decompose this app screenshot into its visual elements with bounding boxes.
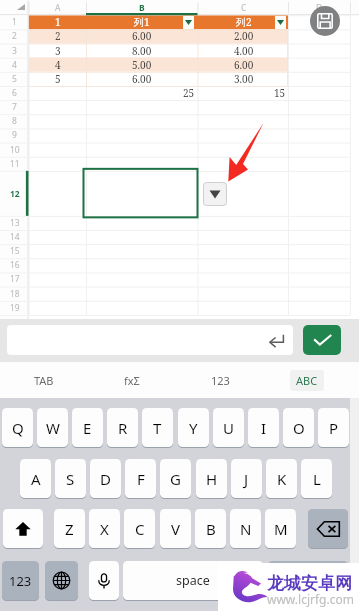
button[interactable]: Voice input	[89, 561, 119, 600]
button[interactable]: 25	[89, 86, 195, 100]
staticText: 6.00	[234, 58, 254, 72]
button[interactable]: B	[195, 509, 226, 548]
staticText: M	[274, 519, 288, 539]
button[interactable]: Language	[45, 561, 78, 600]
button[interactable]: 1	[0, 15, 29, 29]
button[interactable]: Filter	[183, 16, 194, 29]
button[interactable]: S	[55, 459, 86, 498]
staticText: K	[277, 469, 287, 489]
staticText: W	[46, 418, 60, 438]
button[interactable]: Backspace	[308, 509, 348, 548]
staticText: D	[100, 469, 111, 489]
button[interactable]: 19	[0, 301, 29, 315]
button[interactable]: 6.00	[89, 72, 195, 86]
button[interactable]: J	[231, 459, 262, 498]
button[interactable]: 5	[0, 72, 29, 86]
button[interactable]: Save	[310, 6, 340, 36]
button[interactable]: 列1	[89, 15, 195, 29]
button[interactable]: L	[301, 459, 332, 498]
button[interactable]: 5	[32, 72, 84, 86]
button[interactable]: O	[283, 408, 314, 447]
button[interactable]: E	[72, 408, 103, 447]
button[interactable]: 8.00	[89, 44, 195, 58]
button[interactable]: 13	[0, 216, 29, 230]
button[interactable]: Return	[268, 561, 348, 600]
button[interactable]: 10	[0, 143, 29, 157]
button[interactable]: 6.00	[89, 29, 195, 43]
button[interactable]: C	[124, 509, 155, 548]
button[interactable]: 123	[176, 362, 264, 399]
staticText: 25	[183, 86, 195, 100]
button[interactable]: 7	[0, 100, 29, 114]
staticText: R	[118, 418, 128, 438]
staticText: 2	[12, 30, 17, 42]
button[interactable]: 18	[0, 287, 29, 301]
button[interactable]: H	[196, 459, 227, 498]
button[interactable]: 6	[0, 86, 29, 100]
button[interactable]: X	[89, 509, 120, 548]
button[interactable]: 4	[32, 58, 84, 72]
button[interactable]: ABC	[264, 362, 350, 399]
button[interactable]: W	[37, 408, 68, 447]
button[interactable]: A	[20, 459, 51, 498]
button[interactable]: N	[230, 509, 261, 548]
button[interactable]: 4	[0, 58, 29, 72]
button[interactable]: 2	[0, 29, 29, 43]
button[interactable]: 14	[0, 230, 29, 244]
staticText: 4	[12, 59, 17, 71]
button[interactable]: 5.00	[89, 58, 195, 72]
button[interactable]: A	[29, 0, 87, 15]
button[interactable]: D	[288, 0, 350, 15]
button[interactable]: fxΣ	[88, 362, 176, 399]
button[interactable]: Dropdown	[203, 182, 227, 206]
staticText: O	[293, 418, 305, 438]
button[interactable]: P	[318, 408, 349, 447]
button[interactable]: T	[142, 408, 173, 447]
button[interactable]: R	[107, 408, 138, 447]
staticText: Q	[12, 418, 24, 438]
button[interactable]: Z	[54, 509, 85, 548]
button[interactable]: Shift	[3, 509, 43, 548]
button[interactable]: G	[160, 459, 191, 498]
button[interactable]: 11	[0, 157, 29, 171]
button[interactable]: V	[160, 509, 191, 548]
button[interactable]: 2	[32, 29, 84, 43]
button[interactable]: 8	[0, 114, 29, 128]
staticText: 1	[12, 16, 17, 28]
button[interactable]: 2.00	[201, 29, 286, 43]
button[interactable]: C	[198, 0, 289, 15]
staticText: TAB	[34, 373, 54, 388]
button[interactable]: I	[248, 408, 279, 447]
button[interactable]: Q	[2, 408, 33, 447]
button[interactable]: 列2	[201, 15, 286, 29]
button[interactable]: 1	[32, 15, 84, 29]
staticText: 龙城安卓网	[267, 573, 352, 594]
button[interactable]: 16	[0, 258, 29, 272]
button[interactable]: 3.00	[201, 72, 286, 86]
button[interactable]: Filter	[275, 16, 286, 29]
button[interactable]: 12	[0, 171, 29, 216]
button[interactable]: 4.00	[201, 44, 286, 58]
button[interactable]: B	[86, 0, 198, 15]
button[interactable]: space	[123, 561, 263, 600]
button[interactable]: K	[266, 459, 297, 498]
button[interactable]: U	[213, 408, 244, 447]
button[interactable]: 6.00	[201, 58, 286, 72]
staticText: 5	[12, 73, 17, 85]
button[interactable]: TAB	[0, 362, 88, 399]
button[interactable]: 15	[0, 244, 29, 258]
button[interactable]: Y	[178, 408, 209, 447]
button[interactable]: Enter	[7, 325, 293, 355]
staticText: 4.00	[234, 44, 254, 58]
button[interactable]: 17	[0, 272, 29, 286]
button[interactable]: Confirm	[303, 325, 341, 355]
button[interactable]: 9	[0, 128, 29, 142]
button[interactable]: 123	[2, 561, 39, 600]
button[interactable]: Enter	[264, 328, 288, 352]
button[interactable]: 3	[32, 44, 84, 58]
button[interactable]: 15	[201, 86, 286, 100]
button[interactable]: M	[265, 509, 296, 548]
button[interactable]: F	[125, 459, 156, 498]
button[interactable]: D	[90, 459, 121, 498]
button[interactable]: 3	[0, 44, 29, 58]
